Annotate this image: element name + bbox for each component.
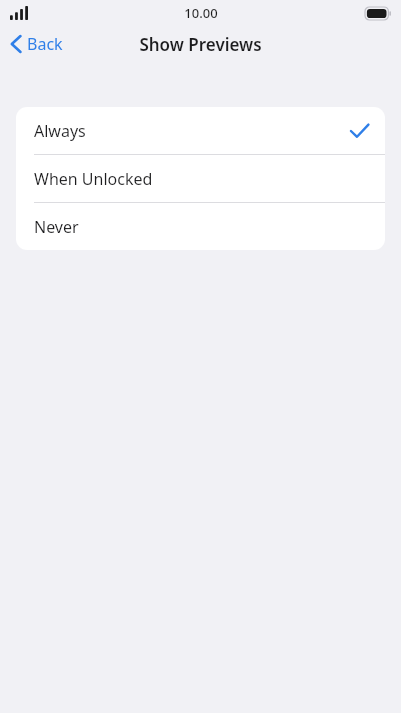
staticText: Show Previews: [139, 33, 262, 56]
button[interactable]: When Unlocked: [16, 155, 385, 202]
button[interactable]: Always: [16, 107, 385, 154]
button[interactable]: Never: [16, 203, 385, 250]
staticText: Always: [34, 120, 86, 142]
staticText: Back: [27, 33, 63, 55]
button[interactable]: Back: [0, 29, 73, 59]
staticText: Never: [34, 216, 79, 238]
other: Selected: [350, 123, 369, 139]
staticText: 10.00: [184, 4, 218, 22]
staticText: When Unlocked: [34, 168, 153, 190]
